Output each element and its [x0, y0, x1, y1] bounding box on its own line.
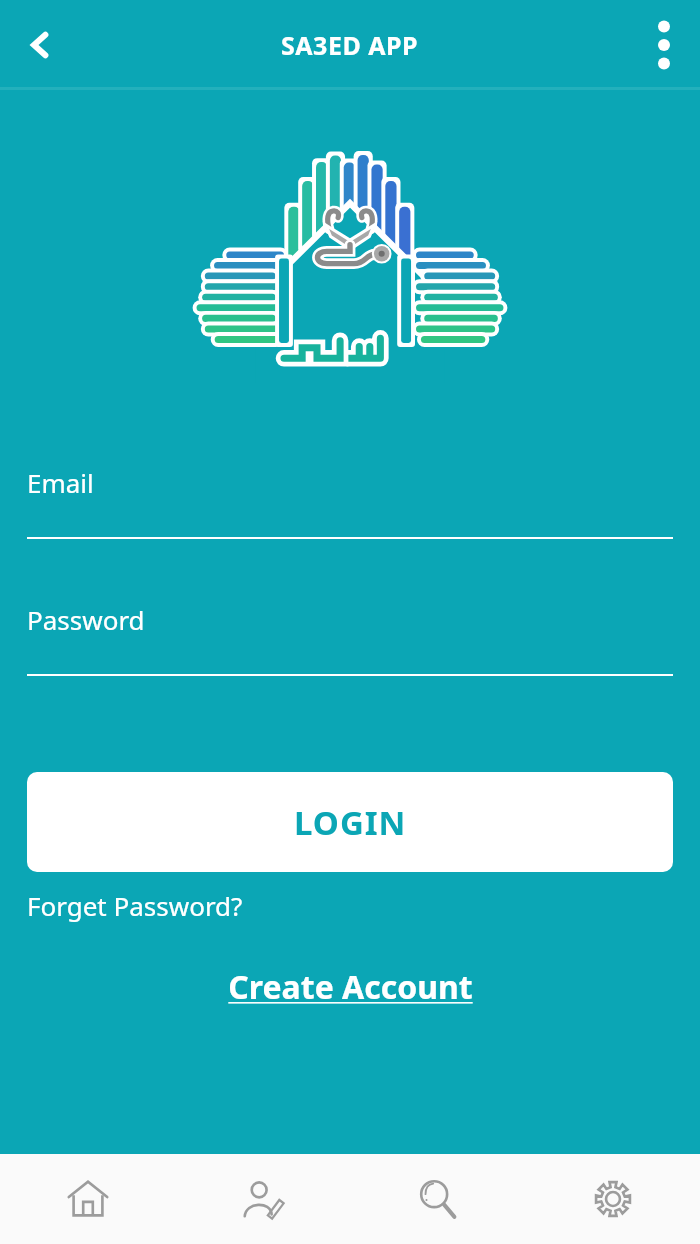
- staticText: Forget Password?: [27, 888, 243, 923]
- staticText: Create Account: [228, 965, 473, 1009]
- button[interactable]: Forget Password?: [27, 888, 243, 923]
- button[interactable]: Settings: [525, 1154, 700, 1244]
- button[interactable]: LOGIN: [27, 772, 673, 872]
- button[interactable]: Home: [0, 1154, 175, 1244]
- staticText: Password: [27, 602, 145, 637]
- staticText: Email: [27, 465, 94, 500]
- staticText: SA3ED APP: [281, 28, 419, 62]
- button[interactable]: Search: [350, 1154, 525, 1244]
- staticText: LOGIN: [294, 800, 407, 845]
- button[interactable]: Create Account: [220, 961, 481, 1013]
- button[interactable]: More options: [636, 17, 692, 73]
- button[interactable]: Edit profile: [175, 1154, 350, 1244]
- button[interactable]: Back: [8, 13, 72, 77]
